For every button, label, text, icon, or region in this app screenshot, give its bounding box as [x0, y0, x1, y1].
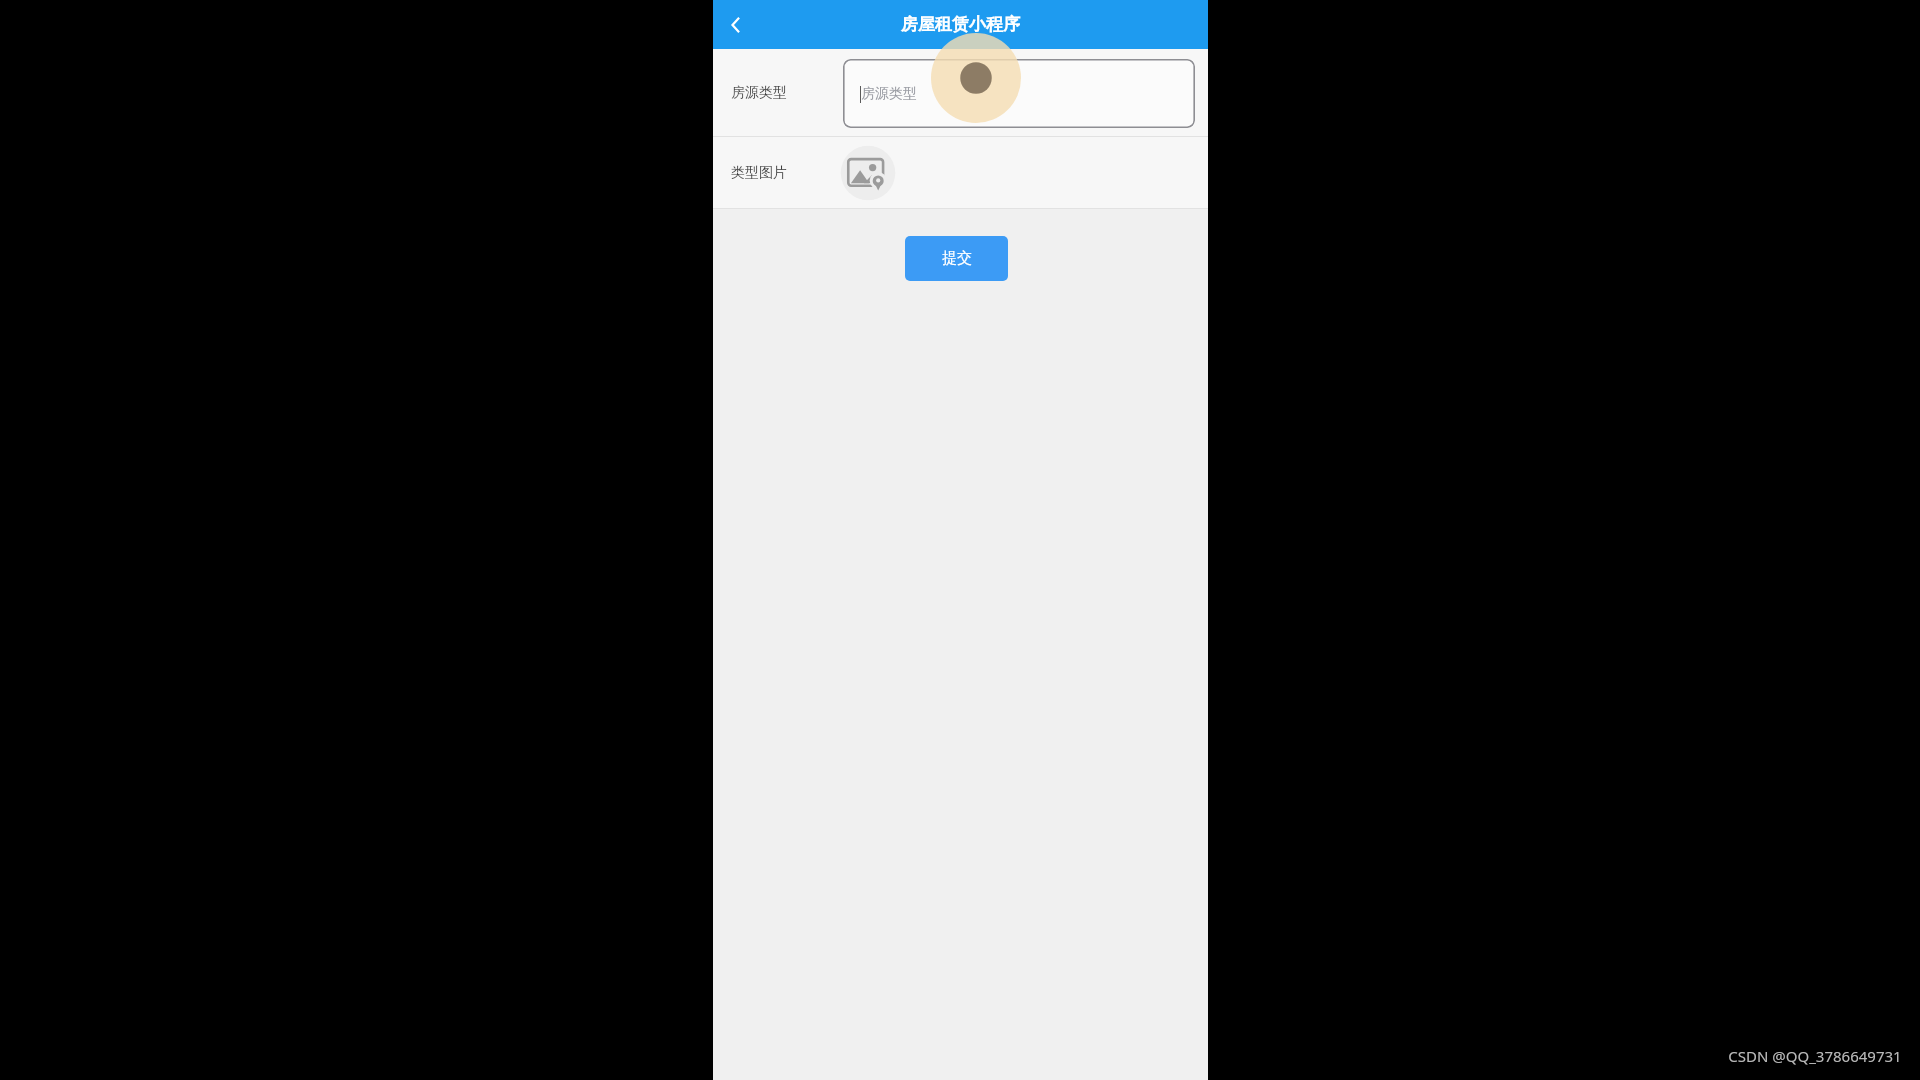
button[interactable]: 房源类型	[843, 59, 1195, 128]
button[interactable]: 类型图片	[713, 137, 1208, 209]
staticText: 提交	[942, 249, 972, 268]
button[interactable]: Upload image	[839, 144, 897, 202]
staticText: 类型图片	[731, 164, 787, 182]
button[interactable]: 提交	[905, 236, 1008, 281]
staticText: CSDN @QQ_3786649731	[1728, 1046, 1902, 1066]
staticText: 房源类型	[861, 85, 917, 103]
staticText: 房源类型	[731, 84, 787, 102]
staticText: 房屋租赁小程序	[901, 14, 1020, 35]
button[interactable]: Back	[713, 2, 759, 48]
button[interactable]: 房源类型	[713, 49, 1208, 137]
